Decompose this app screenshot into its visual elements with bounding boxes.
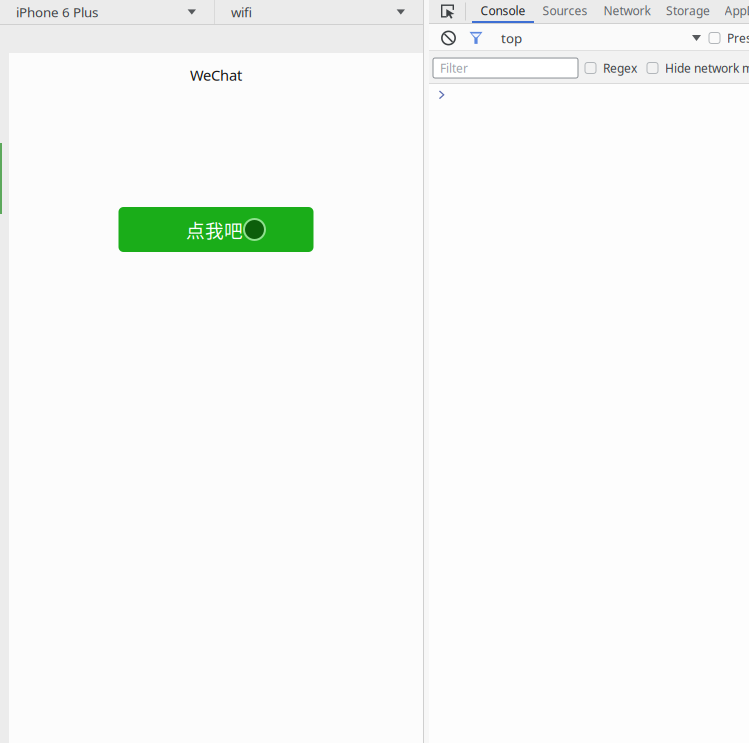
button[interactable]: 点我吧 [118,207,313,252]
staticText: Preserve log [727,30,749,46]
button[interactable]: Sources [534,0,596,23]
button[interactable]: AppData [718,0,749,23]
button[interactable]: iPhone 6 Plus [0,0,214,24]
button[interactable]: Preserve log [709,25,749,51]
button[interactable]: Inspect element [441,0,455,23]
button[interactable]: Hide network messages [647,60,749,76]
button[interactable]: Filter [462,25,490,51]
button[interactable]: Storage [658,0,718,23]
staticText: AppData [724,2,749,18]
staticText: Network [603,2,650,18]
staticText: WeChat [190,65,242,85]
button[interactable]: Execution context [684,25,709,51]
staticText: wifi [231,3,252,21]
button[interactable]: Console [472,0,534,23]
staticText: Hide network messages [665,60,749,76]
button[interactable]: top [490,25,533,51]
staticText: iPhone 6 Plus [16,3,98,21]
staticText: Sources [542,2,587,18]
staticText: 点我吧 [186,216,243,243]
button[interactable]: Clear console [435,25,462,51]
button[interactable]: wifi [215,0,423,24]
button[interactable]: Network [596,0,658,23]
staticText: Filter [440,60,468,76]
staticText: Storage [666,2,710,18]
staticText: Console [480,2,525,18]
staticText: Regex [603,60,637,76]
staticText: top [501,29,522,47]
button[interactable]: Regex [585,60,637,76]
